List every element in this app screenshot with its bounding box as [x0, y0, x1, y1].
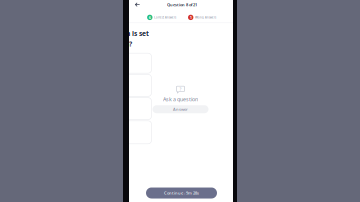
staticText: Correct Answers: [154, 16, 176, 19]
staticText: in this question?: [79, 39, 132, 48]
button[interactable]: [109, 98, 151, 120]
button[interactable]: [109, 53, 151, 73]
staticText: 1: [190, 15, 192, 20]
button[interactable]: [109, 74, 151, 96]
staticText: ?: [179, 86, 181, 91]
staticText: Continue - 9m 28s: [164, 190, 199, 196]
button[interactable]: 1: [188, 15, 216, 20]
button[interactable]: Answer: [152, 105, 208, 113]
staticText: Which condition is set: [79, 29, 149, 38]
button[interactable]: Continue - 9m 28s: [146, 187, 217, 198]
button[interactable]: Back: [132, 0, 143, 10]
button[interactable]: 6: [147, 15, 176, 20]
staticText: 6: [149, 15, 151, 20]
button[interactable]: [109, 121, 151, 144]
staticText: Wrong Answers: [195, 16, 216, 19]
staticText: Ask a question: [163, 96, 198, 103]
staticText: Answer: [173, 107, 188, 112]
staticText: Question 8 of 21: [167, 2, 197, 7]
